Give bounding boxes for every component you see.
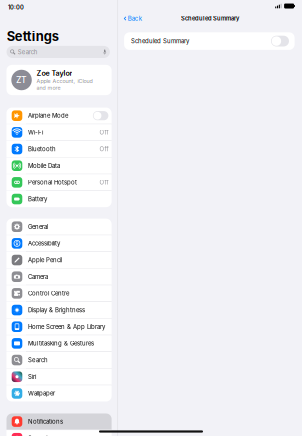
staticText: Home Screen & App Library bbox=[28, 323, 105, 330]
button[interactable]: ZT bbox=[6, 65, 112, 95]
staticText: Battery bbox=[28, 195, 47, 203]
staticText: Search bbox=[28, 356, 48, 364]
button[interactable]: Home Screen & App Library bbox=[6, 319, 112, 335]
button[interactable]: Multitasking & Gestures bbox=[6, 335, 112, 351]
staticText: Zoe Taylor bbox=[36, 69, 72, 78]
staticText: Sounds bbox=[28, 435, 51, 436]
staticText: Display & Brightness bbox=[28, 306, 85, 314]
staticText: Airplane Mode bbox=[28, 112, 68, 119]
staticText: Control Centre bbox=[28, 290, 69, 297]
button[interactable]: Siri bbox=[6, 369, 112, 385]
staticText: Off bbox=[99, 145, 108, 153]
staticText: Bluetooth bbox=[28, 145, 56, 153]
button[interactable]: Mobile Data bbox=[6, 158, 112, 174]
staticText: General bbox=[28, 223, 48, 230]
button[interactable]: Airplane Mode bbox=[6, 108, 112, 124]
button[interactable]: Control Centre bbox=[6, 285, 112, 301]
button[interactable]: Wallpaper bbox=[6, 385, 112, 401]
button[interactable]: Personal Hotspot bbox=[6, 174, 112, 190]
button[interactable]: Bluetooth bbox=[6, 141, 112, 157]
staticText: Off bbox=[99, 179, 108, 186]
staticText: Personal Hotspot bbox=[28, 179, 77, 186]
staticText: Scheduled Summary bbox=[181, 15, 239, 22]
staticText: Accessibility bbox=[28, 240, 60, 247]
staticText: Back bbox=[128, 15, 142, 22]
staticText: Search bbox=[18, 48, 38, 56]
button[interactable]: Notifications bbox=[6, 413, 112, 430]
button[interactable]: Apple Pencil bbox=[6, 252, 112, 268]
staticText: Notifications bbox=[28, 418, 63, 425]
staticText: ZT bbox=[16, 75, 27, 85]
staticText: Off bbox=[99, 129, 108, 136]
button[interactable]: Search bbox=[6, 352, 112, 368]
button[interactable]: Wi-Fi bbox=[6, 124, 112, 140]
staticText: Apple Pencil bbox=[28, 256, 62, 264]
staticText: Multitasking & Gestures bbox=[28, 340, 94, 347]
button[interactable]: Camera bbox=[6, 269, 112, 285]
button[interactable]: General bbox=[6, 219, 112, 235]
staticText: Apple Account, iCloud bbox=[36, 78, 92, 84]
button[interactable]: Accessibility bbox=[6, 235, 112, 251]
staticText: Mobile Data bbox=[28, 162, 60, 169]
staticText: Siri bbox=[28, 373, 36, 380]
staticText: Settings bbox=[7, 29, 59, 44]
staticText: Camera bbox=[28, 273, 48, 280]
button[interactable]: Display & Brightness bbox=[6, 302, 112, 318]
staticText: Wallpaper bbox=[28, 390, 55, 397]
staticText: Wi-Fi bbox=[28, 129, 43, 136]
staticText: Scheduled Summary bbox=[131, 37, 189, 45]
button[interactable]: Sounds bbox=[6, 430, 112, 436]
staticText: 10:00 bbox=[8, 4, 24, 11]
staticText: and more bbox=[36, 85, 60, 91]
button[interactable]: Back bbox=[118, 13, 147, 24]
button[interactable]: Battery bbox=[6, 191, 112, 207]
